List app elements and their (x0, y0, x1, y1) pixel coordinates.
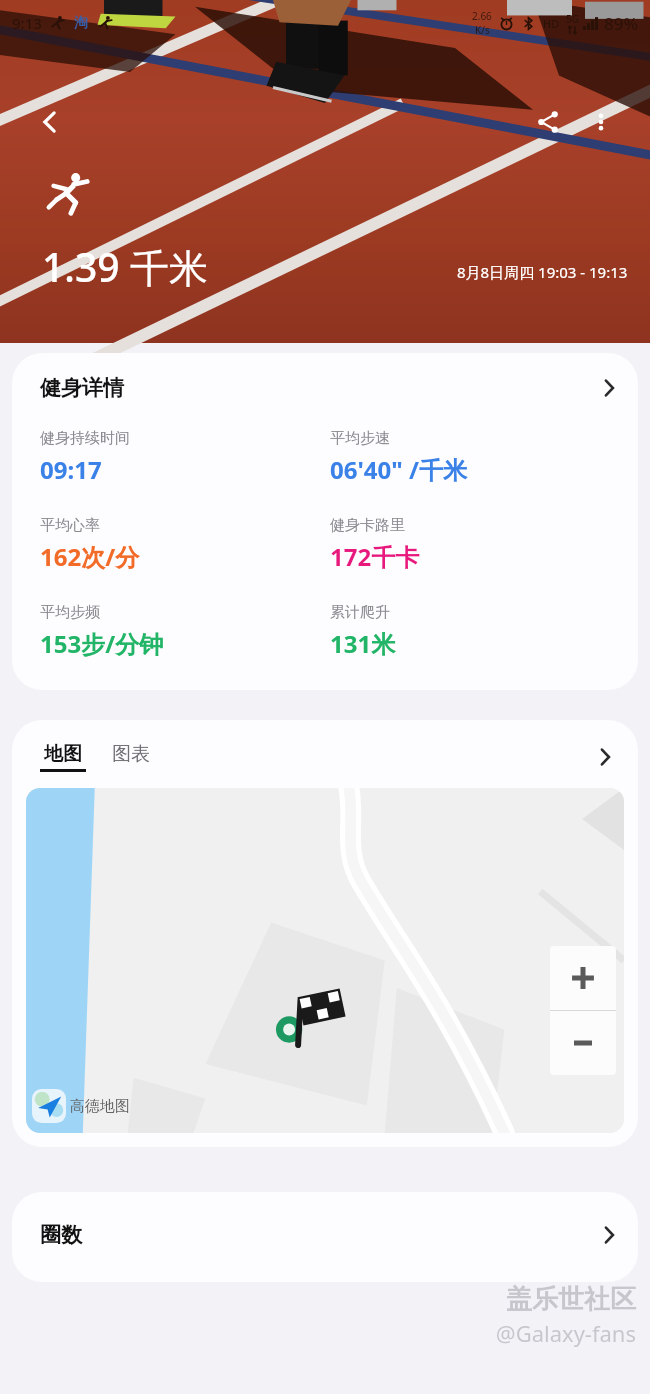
staticText: 06'40" /千米 (330, 453, 467, 486)
staticText: 89% (604, 12, 638, 35)
staticText: 盖乐世社区 (506, 1283, 636, 1316)
staticText: 地图 (44, 742, 82, 766)
staticText: K/s (475, 23, 490, 37)
button[interactable]: 图表 (112, 742, 150, 772)
staticText: 5G (566, 12, 579, 26)
staticText: 淘 (74, 14, 88, 32)
button[interactable]: 地图 (40, 742, 86, 772)
staticText: 平均步频 (40, 603, 100, 622)
staticText: 平均步速 (330, 429, 390, 448)
staticText: 健身详情 (40, 375, 124, 401)
staticText: 高德地图 (70, 1097, 130, 1116)
button[interactable]: Share (524, 98, 572, 146)
staticText: 172千卡 (330, 540, 420, 573)
staticText: @Galaxy-fans (495, 1318, 636, 1348)
staticText: 153步/分钟 (40, 627, 164, 660)
button[interactable]: Open map (590, 742, 620, 772)
button[interactable]: Route map (26, 788, 624, 1133)
staticText: 健身卡路里 (330, 516, 405, 535)
staticText: 图表 (112, 742, 150, 766)
staticText: 9:13 (12, 13, 42, 33)
staticText: 2.66 (472, 9, 492, 23)
staticText: 09:17 (40, 453, 102, 486)
staticText: 8月8日周四 19:03 - 19:13 (457, 262, 628, 282)
button[interactable]: 健身详情 (12, 353, 638, 690)
staticText: 健身持续时间 (40, 429, 130, 448)
staticText: 1.39 千米 (42, 240, 208, 293)
button[interactable]: Zoom out (550, 1011, 616, 1075)
staticText: 131米 (330, 627, 396, 660)
button[interactable]: Back (26, 98, 74, 146)
staticText: 圈数 (40, 1222, 82, 1248)
button[interactable]: More options (577, 98, 625, 146)
button[interactable]: Zoom in (550, 946, 616, 1010)
button[interactable]: 圈数 (12, 1192, 638, 1282)
staticText: 162次/分 (40, 540, 140, 573)
staticText: HD (543, 16, 560, 31)
staticText: 平均心率 (40, 516, 100, 535)
staticText: 累计爬升 (330, 603, 390, 622)
